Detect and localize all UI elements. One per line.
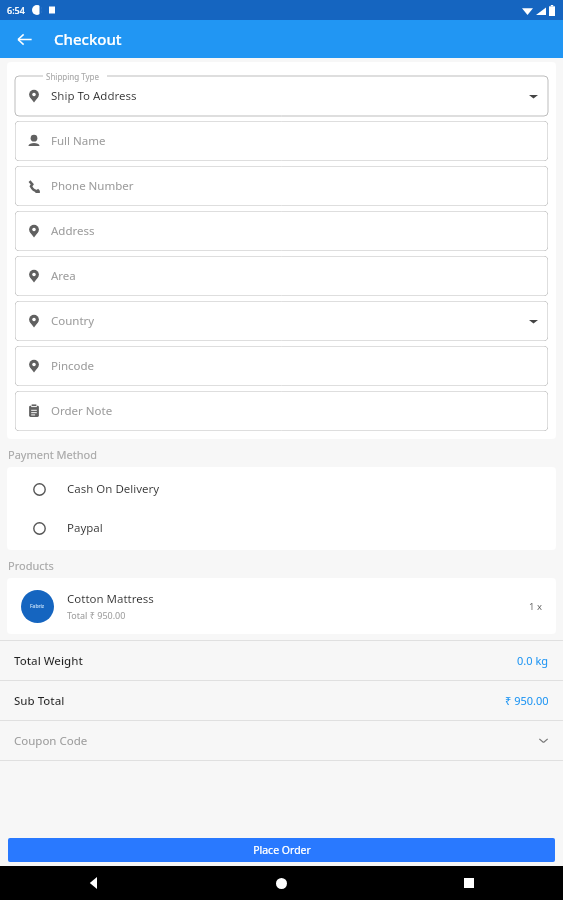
button[interactable]: Pincode (15, 346, 548, 386)
button[interactable]: Back (0, 866, 187, 900)
staticText: Shipping Type (46, 71, 100, 82)
button[interactable]: Recent apps (375, 866, 563, 900)
staticText: Order Note (51, 403, 113, 419)
staticText: 1 x (529, 600, 542, 613)
staticText: ₹ 950.00 (505, 693, 549, 708)
button[interactable]: Back (8, 23, 40, 55)
staticText: Fabriz (30, 603, 45, 610)
staticText: Cash On Delivery (67, 481, 160, 497)
button[interactable]: Fabriz (7, 578, 556, 634)
button[interactable]: Phone Number (15, 166, 548, 206)
staticText: Total Weight (14, 653, 83, 669)
staticText: Full Name (51, 133, 106, 149)
staticText: Phone Number (51, 178, 134, 194)
staticText: Pincode (51, 358, 95, 374)
button[interactable]: Place Order (8, 838, 555, 862)
staticText: Place Order (253, 843, 311, 857)
staticText: Payment Method (8, 447, 97, 462)
button[interactable]: Shipping Type (15, 70, 548, 116)
staticText: Total ₹ 950.00 (67, 609, 126, 621)
staticText: Country (51, 313, 95, 329)
staticText: Products (8, 558, 54, 573)
button[interactable]: Order Note (15, 391, 548, 431)
button[interactable]: Paypal (7, 516, 556, 540)
staticText: Sub Total (14, 693, 65, 709)
button[interactable]: Country (15, 301, 548, 341)
staticText: 6:54 (7, 4, 25, 16)
staticText: Cotton Mattress (67, 591, 154, 607)
staticText: Paypal (67, 520, 103, 536)
staticText: 0.0 kg (517, 653, 549, 668)
staticText: Ship To Address (51, 88, 137, 104)
staticText: Checkout (54, 29, 122, 49)
staticText: Address (51, 223, 95, 239)
button[interactable]: Address (15, 211, 548, 251)
button[interactable]: Home (187, 866, 375, 900)
button[interactable]: Coupon Code (0, 721, 563, 760)
staticText: Coupon Code (14, 733, 88, 749)
staticText: Area (51, 268, 76, 284)
button[interactable]: Full Name (15, 121, 548, 161)
button[interactable]: Area (15, 256, 548, 296)
button[interactable]: Cash On Delivery (7, 477, 556, 501)
